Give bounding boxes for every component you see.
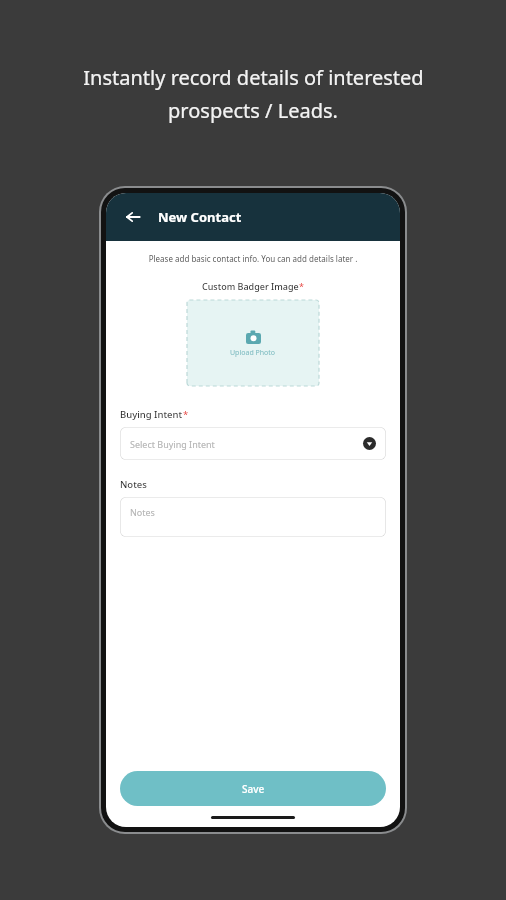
staticText: * <box>299 280 304 292</box>
staticText: Upload Photo <box>230 348 276 358</box>
staticText: Notes <box>120 478 147 491</box>
staticText: * <box>183 408 189 421</box>
button[interactable]: Select Buying Intent <box>120 427 386 460</box>
staticText: Notes <box>130 506 155 518</box>
staticText: Buying Intent <box>120 408 183 421</box>
staticText: Custom Badger Image <box>202 280 299 292</box>
button[interactable]: Notes <box>120 497 386 537</box>
staticText: Please add basic contact info. You can a… <box>106 253 400 264</box>
staticText: Save <box>242 782 265 796</box>
staticText: Select Buying Intent <box>130 438 363 450</box>
button[interactable]: Back <box>118 202 148 232</box>
staticText: prospects / Leads. <box>168 97 338 124</box>
staticText: New Contact <box>158 208 242 226</box>
button[interactable]: Upload Photo <box>187 300 319 386</box>
staticText: Instantly record details of interested <box>83 64 424 91</box>
button[interactable]: Save <box>120 771 386 806</box>
